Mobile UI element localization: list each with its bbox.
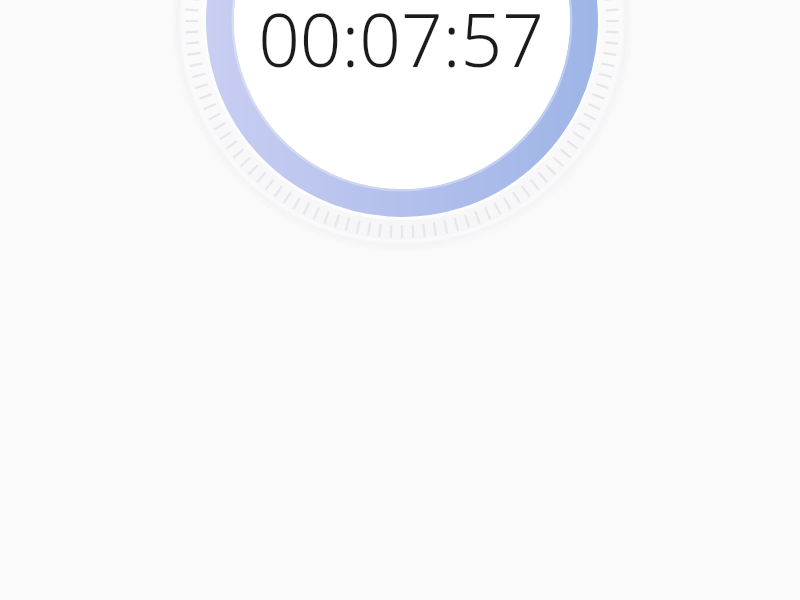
button[interactable]: Timer, 00:07:57 remaining. Tap to pause [0, 0, 800, 600]
staticText: 00:07:57 [258, 0, 544, 88]
